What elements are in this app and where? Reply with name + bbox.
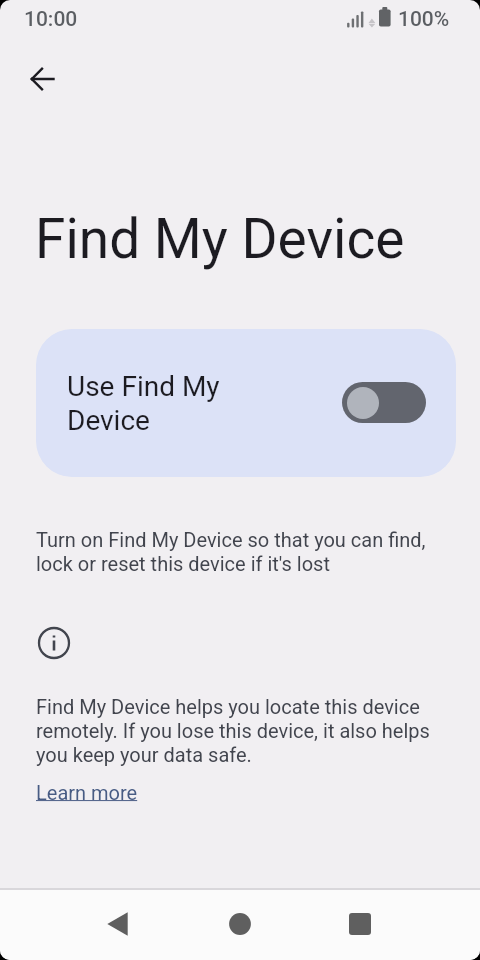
button[interactable]: Use Find My Device [36,329,456,477]
button[interactable]: Recent apps [336,900,384,948]
staticText: Learn more [36,781,138,804]
button[interactable]: Home [216,900,264,948]
staticText: 10:00 [24,7,78,32]
staticText: Turn on Find My Device so that you can f… [36,528,426,576]
button[interactable]: Learn more [36,781,138,804]
staticText: 100% [398,7,450,32]
staticText: Find My Device helps you locate this dev… [36,695,430,767]
button[interactable]: Back [94,900,142,948]
staticText: Use Find My Device [67,370,220,437]
button[interactable]: Use Find My Device toggle [342,382,426,423]
button[interactable]: Back [19,55,67,103]
staticText: Find My Device [35,207,405,271]
